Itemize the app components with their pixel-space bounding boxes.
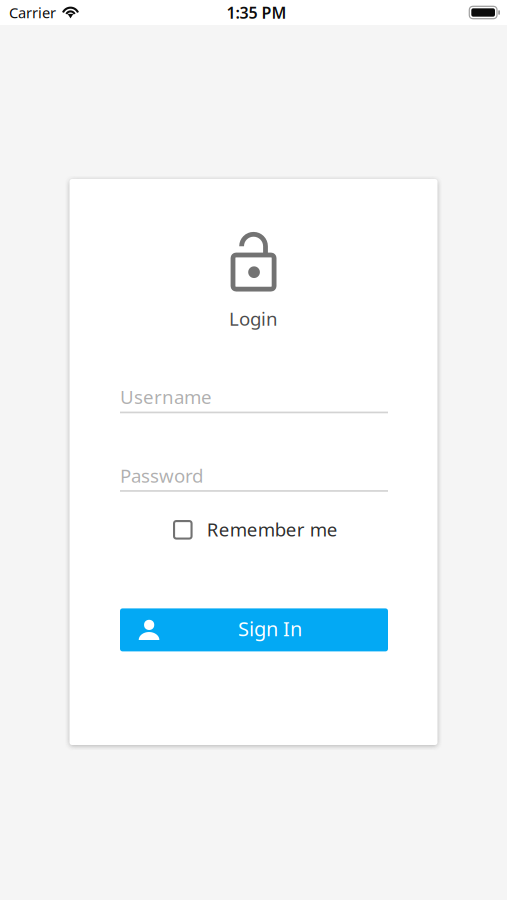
button[interactable]: Sign In xyxy=(120,608,388,651)
button[interactable]: Remember me xyxy=(173,520,337,544)
staticText: Username xyxy=(120,384,212,409)
staticText: 1:35 PM xyxy=(226,2,286,23)
button[interactable]: Username xyxy=(120,384,388,413)
staticText: Remember me xyxy=(207,517,338,542)
staticText: Password xyxy=(120,463,203,488)
staticText: Sign In xyxy=(238,615,302,642)
staticText: Carrier xyxy=(9,3,56,22)
staticText: Login xyxy=(229,306,278,331)
button[interactable]: Password xyxy=(120,463,388,492)
